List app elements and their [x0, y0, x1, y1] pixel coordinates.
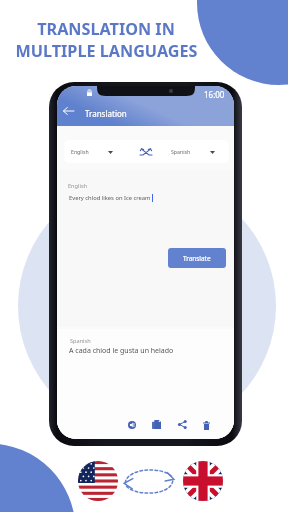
button[interactable]: Share	[176, 418, 189, 431]
staticText: Spanish	[171, 148, 191, 155]
staticText: MULTIPLE LANGUAGES	[15, 40, 198, 62]
button[interactable]: Translate	[168, 248, 226, 268]
button[interactable]	[64, 140, 114, 163]
staticText: 16:00	[204, 89, 225, 100]
staticText: Translate	[183, 254, 211, 263]
button[interactable]: Delete	[200, 418, 213, 431]
staticText: English	[71, 148, 89, 155]
button[interactable]: Listen	[125, 418, 138, 431]
button[interactable]	[164, 140, 229, 163]
button[interactable]: Swap languages	[135, 143, 157, 160]
staticText: Every chlod likes on Ice cream	[69, 194, 151, 202]
staticText: Spanish	[70, 337, 91, 345]
button[interactable]: Copy	[150, 418, 163, 431]
staticText: Translation	[85, 108, 127, 119]
staticText: TRANSLATION IN	[37, 18, 175, 40]
button[interactable]: Back	[57, 104, 79, 118]
staticText: A cada chiod le gusta un helado	[69, 346, 174, 356]
staticText: English	[68, 182, 88, 190]
